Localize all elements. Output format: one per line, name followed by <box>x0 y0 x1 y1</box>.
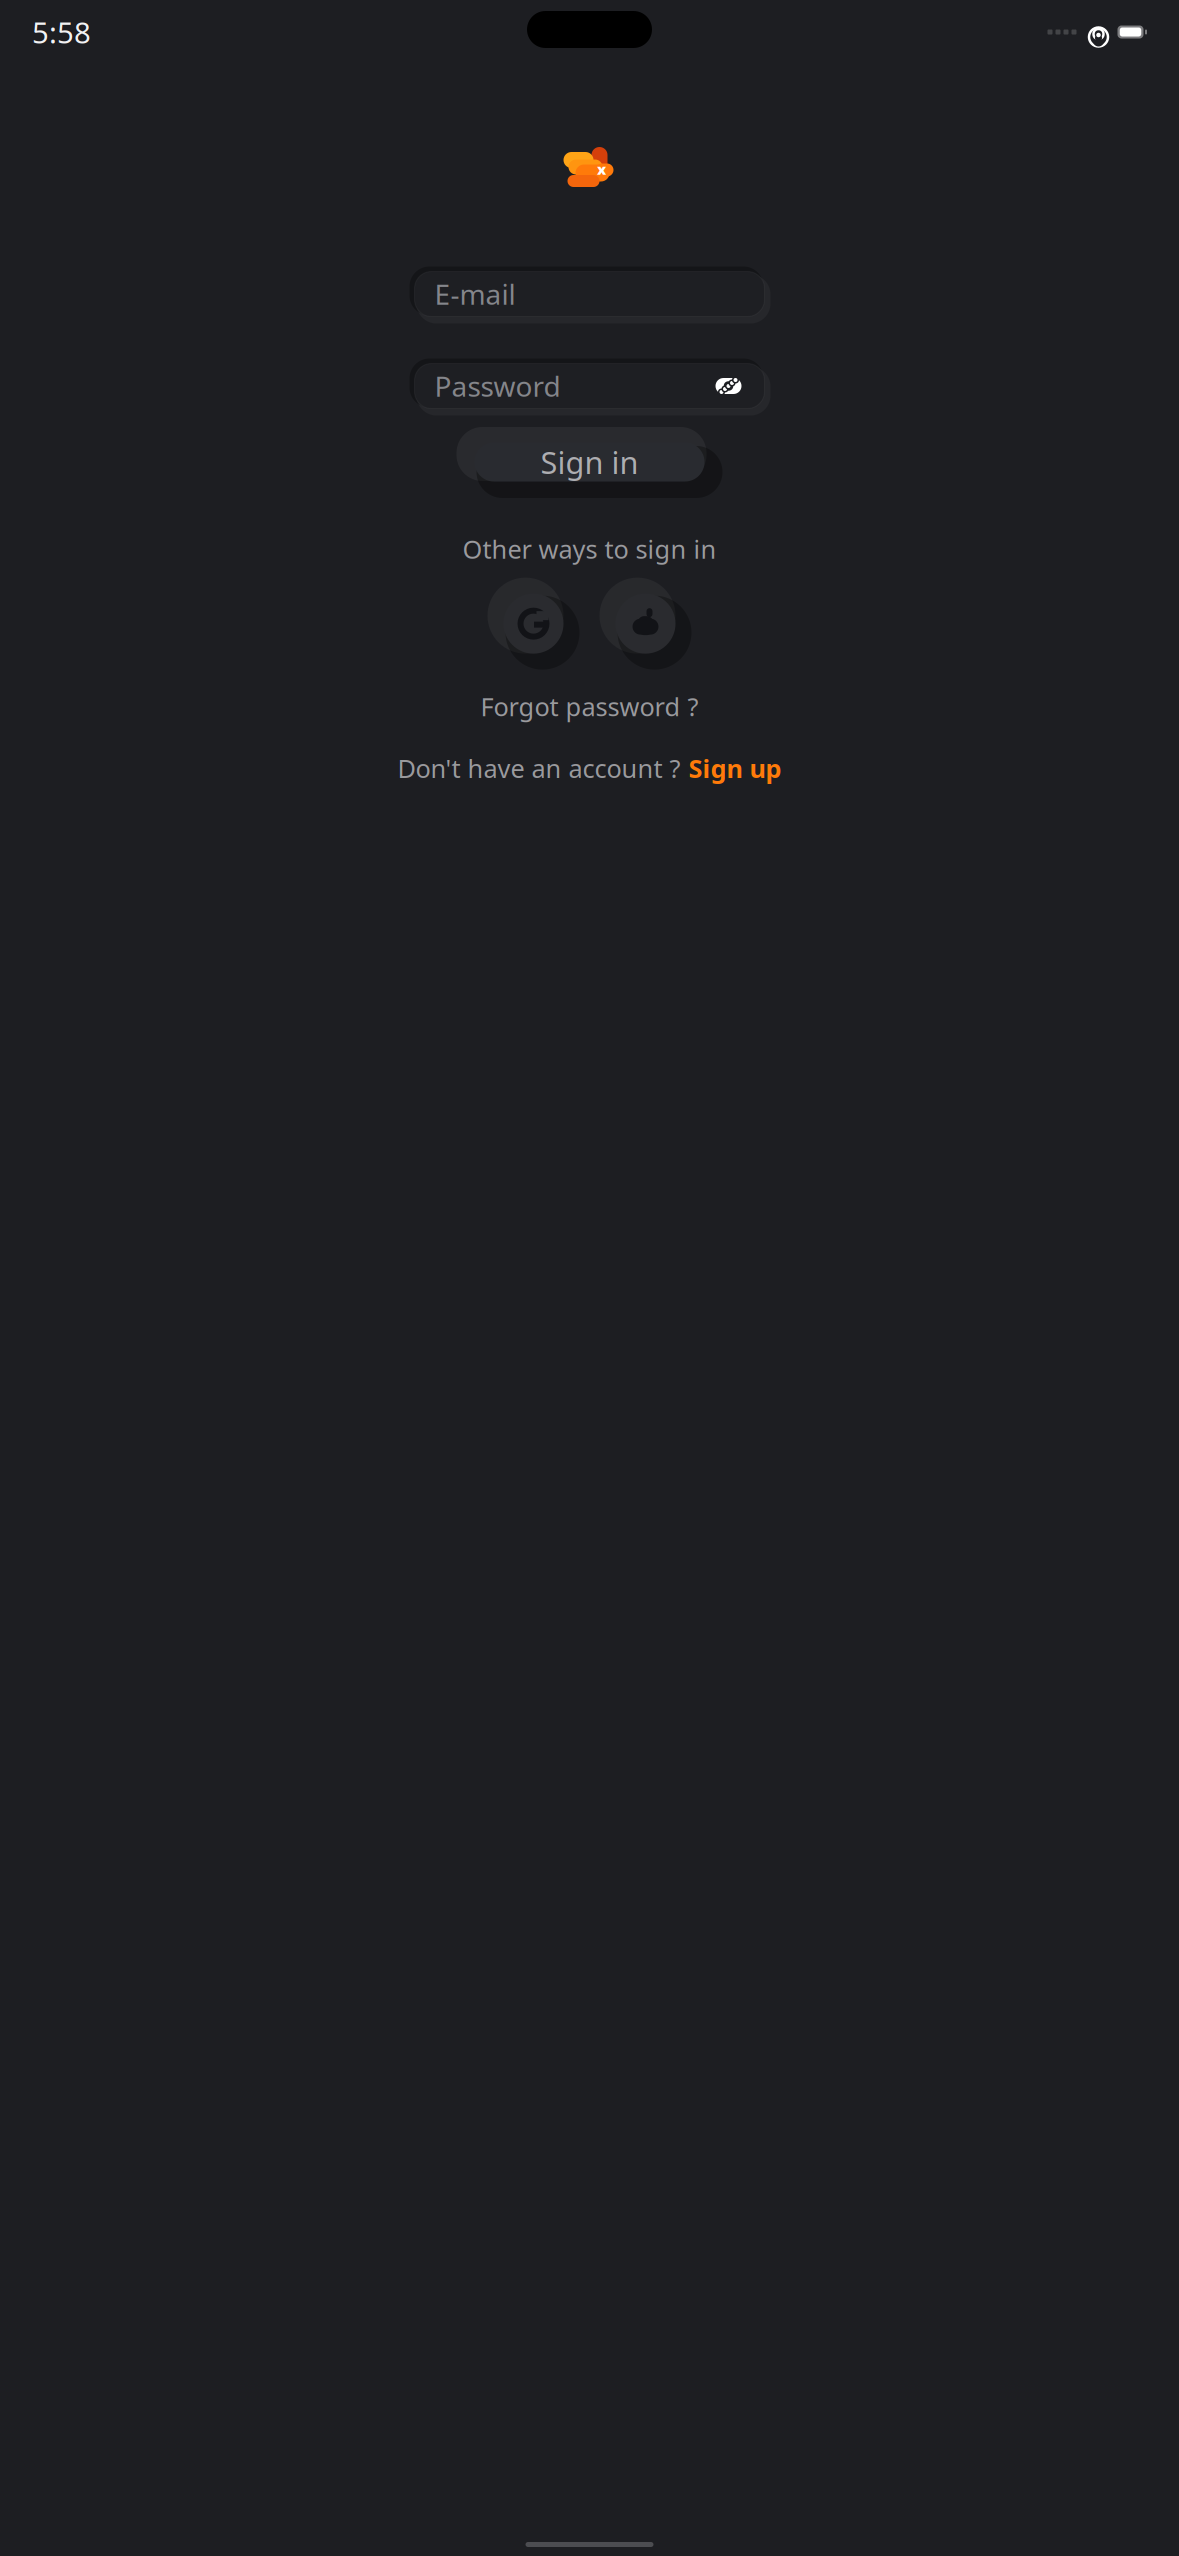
staticText: Sign up <box>688 751 781 785</box>
button[interactable]: Sign in <box>474 442 704 481</box>
button[interactable]: Sign up <box>688 745 781 791</box>
staticText: E-mail <box>434 275 515 313</box>
staticText: x <box>597 159 606 179</box>
staticText: Don't have an account ? <box>397 751 680 785</box>
staticText: Password <box>434 367 560 405</box>
button[interactable]: Sign in with Apple <box>615 594 675 654</box>
button[interactable]: Show password <box>710 369 746 403</box>
staticText: 5:58 <box>32 12 91 51</box>
staticText: Forgot password ? <box>480 690 698 723</box>
staticText: Other ways to sign in <box>462 532 716 566</box>
button[interactable]: Sign in with Google <box>503 594 563 654</box>
button[interactable]: Forgot password ? <box>464 682 714 731</box>
staticText: Sign in <box>540 442 638 482</box>
